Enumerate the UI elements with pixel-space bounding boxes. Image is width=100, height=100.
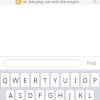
staticText: E (23, 76, 27, 85)
button[interactable]: Post (84, 58, 99, 68)
staticText: K (78, 91, 83, 100)
staticText: J (69, 91, 71, 100)
button[interactable]: O (81, 73, 89, 87)
staticText: D (28, 91, 33, 100)
button[interactable]: D (26, 90, 34, 100)
staticText: A (8, 91, 13, 100)
staticText: R (33, 76, 38, 85)
staticText: P (93, 76, 97, 85)
button[interactable]: S (16, 90, 24, 100)
staticText: W (12, 76, 19, 85)
button[interactable]: Y (51, 73, 59, 87)
button[interactable]: T (41, 73, 49, 87)
staticText: T (43, 76, 47, 85)
button[interactable] (3, 59, 82, 68)
button[interactable]: L (86, 90, 94, 100)
staticText: O (82, 76, 88, 85)
staticText: L (88, 91, 92, 100)
button[interactable]: J (66, 90, 74, 100)
staticText: Q (2, 76, 8, 85)
button[interactable]: W (11, 73, 19, 87)
button[interactable]: P (91, 73, 99, 87)
staticText: S (18, 91, 22, 100)
staticText: Y (53, 76, 57, 85)
staticText: G (48, 91, 53, 100)
staticText: 2h (93, 0, 98, 4)
button[interactable]: K (76, 90, 84, 100)
button[interactable]: A (6, 90, 14, 100)
button[interactable]: U (61, 73, 69, 87)
button[interactable]: G (46, 90, 54, 100)
staticText: F (38, 91, 42, 100)
staticText: I (74, 76, 77, 85)
staticText: on hanging out with the maybe (23, 0, 80, 4)
button[interactable]: H (56, 90, 64, 100)
staticText: Post (87, 60, 97, 66)
button[interactable]: E (21, 73, 29, 87)
staticText: U (63, 76, 68, 85)
button[interactable]: F (36, 90, 44, 100)
button[interactable]: R (31, 73, 39, 87)
button[interactable]: I (71, 73, 79, 87)
button[interactable]: on hanging out with the maybe (0, 0, 100, 5)
staticText: H (58, 91, 63, 100)
button[interactable]: Q (1, 73, 9, 87)
